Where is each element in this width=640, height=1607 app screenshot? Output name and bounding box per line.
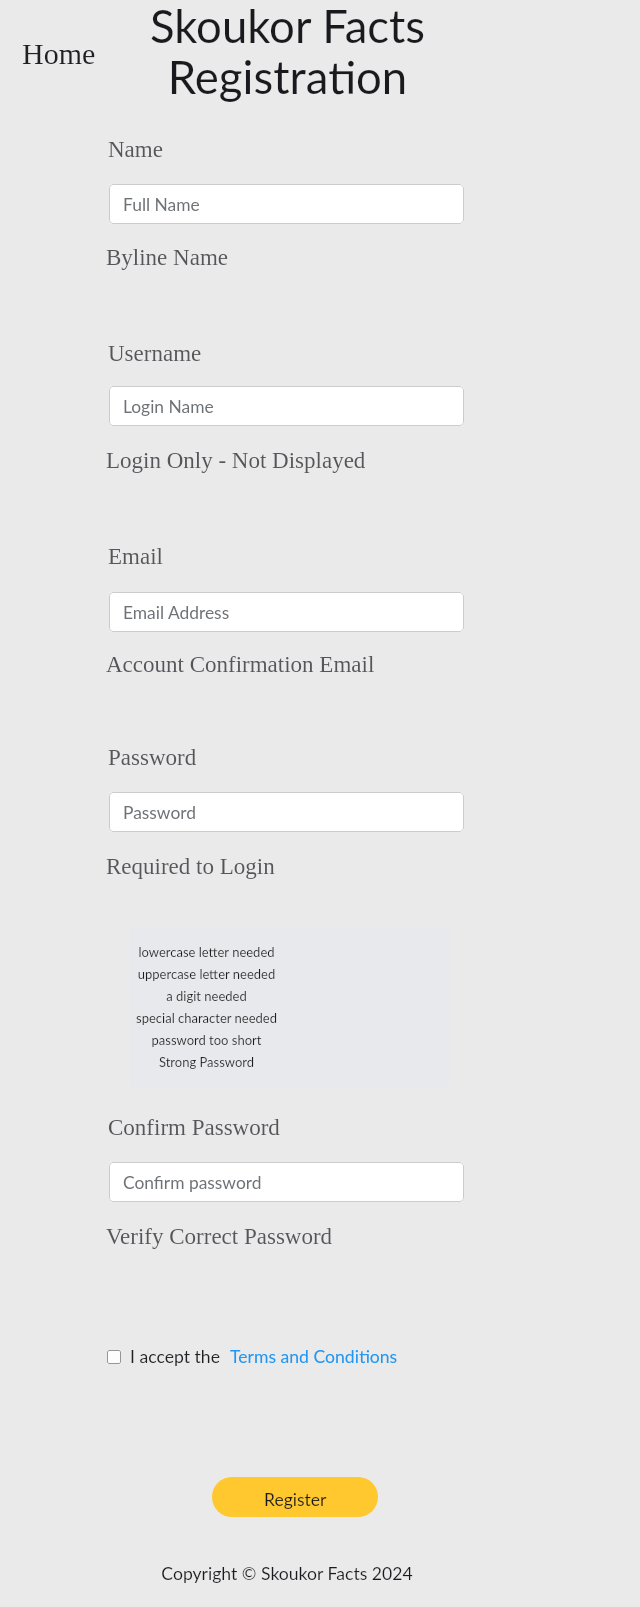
staticText: a digit needed bbox=[106, 988, 307, 1004]
staticText: Confirm Password bbox=[108, 1115, 280, 1140]
staticText: Full Name bbox=[123, 194, 200, 215]
staticText: special character needed bbox=[106, 1010, 307, 1026]
button[interactable]: Email Address bbox=[109, 592, 464, 632]
staticText: Register bbox=[264, 1489, 327, 1510]
staticText: Skoukor Facts Registration bbox=[87, 0, 488, 104]
staticText: Verify Correct Password bbox=[106, 1224, 333, 1249]
staticText: Email bbox=[108, 544, 163, 569]
staticText: Copyright © Skoukor Facts 2024 bbox=[87, 1563, 487, 1584]
staticText: Username bbox=[108, 341, 202, 366]
staticText: Byline Name bbox=[106, 245, 228, 270]
button[interactable]: Terms and Conditions bbox=[230, 1346, 398, 1367]
staticText: uppercase letter needed bbox=[106, 966, 307, 982]
staticText: Login Only - Not Displayed bbox=[106, 448, 366, 473]
staticText: Strong Password bbox=[106, 1054, 307, 1070]
staticText: Required to Login bbox=[106, 854, 275, 879]
staticText: Account Confirmation Email bbox=[106, 652, 375, 677]
staticText: Password bbox=[108, 745, 197, 770]
button[interactable]: Login Name bbox=[109, 386, 464, 426]
staticText: lowercase letter needed bbox=[106, 944, 307, 960]
staticText: Login Name bbox=[123, 396, 214, 417]
button[interactable]: I accept the terms checkbox bbox=[107, 1350, 121, 1364]
staticText: password too short bbox=[106, 1032, 307, 1048]
staticText: Name bbox=[108, 137, 163, 162]
staticText: Home bbox=[22, 37, 96, 70]
button[interactable]: Confirm password bbox=[109, 1162, 464, 1202]
staticText: Email Address bbox=[123, 602, 230, 623]
button[interactable]: Full Name bbox=[109, 184, 464, 224]
button[interactable]: Home bbox=[22, 37, 96, 70]
staticText: Confirm password bbox=[123, 1172, 262, 1193]
button[interactable]: Password bbox=[109, 792, 464, 832]
staticText: Password bbox=[123, 802, 196, 823]
button[interactable]: Register bbox=[212, 1477, 378, 1517]
staticText: Terms and Conditions bbox=[230, 1346, 398, 1367]
staticText: I accept the bbox=[130, 1346, 220, 1367]
